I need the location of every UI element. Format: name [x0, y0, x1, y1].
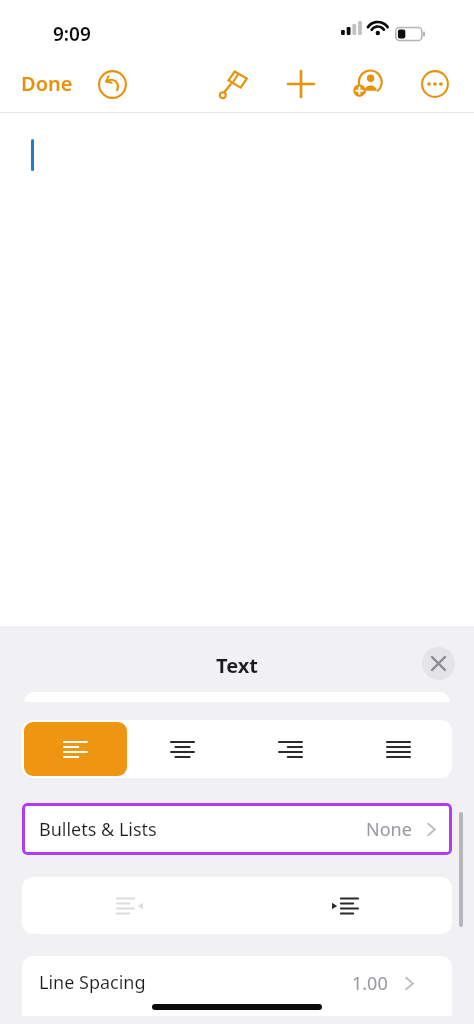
staticText: Done: [21, 70, 73, 97]
button[interactable]: Line Spacing: [22, 956, 452, 1016]
staticText: None: [366, 817, 412, 842]
button[interactable]: Share note: [345, 62, 389, 106]
button[interactable]: Done: [10, 63, 84, 104]
button[interactable]: Undo: [90, 62, 134, 106]
staticText: 9:09: [53, 21, 91, 47]
button[interactable]: Justify: [346, 722, 450, 776]
button[interactable]: Add attachment: [279, 62, 323, 106]
button[interactable]: Align left: [24, 722, 127, 776]
staticText: Line Spacing: [39, 970, 146, 995]
button[interactable]: Align right: [238, 722, 342, 776]
staticText: Text: [216, 652, 258, 679]
button[interactable]: Markup: [211, 62, 255, 106]
staticText: Bullets & Lists: [39, 817, 157, 842]
staticText: 1.00: [352, 971, 388, 996]
button[interactable]: Increase indent: [237, 877, 452, 934]
button[interactable]: Align center: [131, 722, 234, 776]
button[interactable]: More options: [413, 62, 457, 106]
button[interactable]: Close: [422, 647, 455, 680]
button[interactable]: Bullets & Lists: [22, 803, 452, 855]
button[interactable]: Decrease indent: [22, 877, 237, 934]
